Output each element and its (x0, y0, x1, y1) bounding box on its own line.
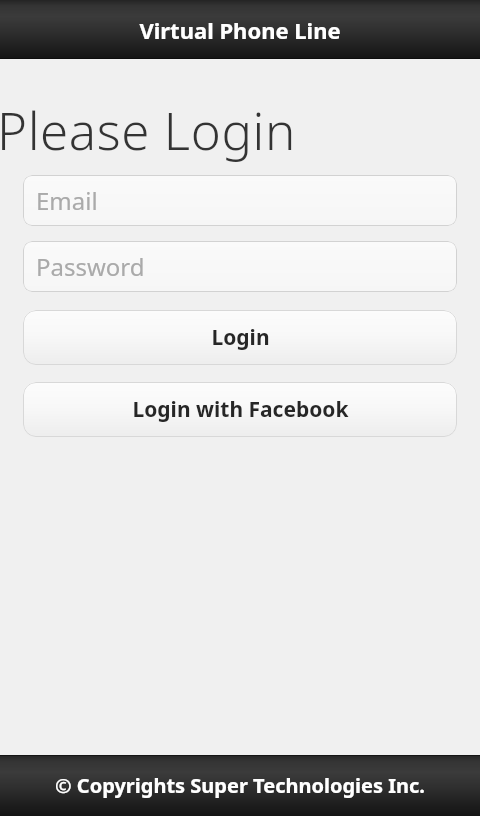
button[interactable]: Login with Facebook (23, 382, 457, 437)
button[interactable]: Password (23, 241, 457, 292)
staticText: © Copyrights Super Technologies Inc. (55, 772, 425, 799)
staticText: Login (211, 323, 270, 352)
button[interactable]: Email (23, 175, 457, 226)
staticText: Password (36, 250, 145, 283)
staticText: Virtual Phone Line (139, 15, 341, 45)
staticText: Please Login (0, 95, 296, 163)
staticText: Email (36, 184, 98, 217)
staticText: Login with Facebook (132, 395, 349, 424)
button[interactable]: Login (23, 310, 457, 365)
